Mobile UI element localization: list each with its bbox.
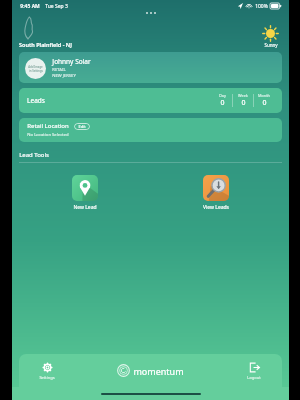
staticText: Retail Location [27,122,69,130]
staticText: NEW JERSEY [52,73,76,79]
other: View Leads [203,175,229,201]
staticText: 9:45 AM [20,3,40,10]
staticText: New Lead [73,204,97,211]
staticText: South Plainfield - NJ [19,41,72,48]
staticText: Sunny [264,42,278,48]
button[interactable]: View Leads [201,173,231,213]
button[interactable]: Add Image [19,52,282,83]
staticText: Lead Tools [19,151,49,159]
staticText: momentum [133,365,184,377]
staticText: Month [258,93,270,98]
staticText: View Leads [203,204,229,211]
button[interactable]: New Lead [70,173,100,213]
staticText: Tue Sep 3 [45,3,68,10]
other: New Lead [72,175,98,201]
staticText: in Settings [29,69,43,73]
staticText: No Location Selected [27,132,69,138]
button[interactable]: Retail Location [19,118,282,142]
button[interactable]: Settings [29,362,65,380]
staticText: Day [219,93,226,98]
other: Settings [42,362,53,373]
staticText: 0 [220,98,225,108]
staticText: 100% [255,3,268,10]
staticText: Leads [27,96,45,105]
other: Logout [249,362,260,373]
staticText: 0 [262,98,267,108]
staticText: Settings [39,375,55,380]
staticText: Johnny Solar [52,57,91,66]
button[interactable]: Logout [236,362,272,380]
staticText: Add Image [28,65,43,69]
staticText: Week [238,93,248,98]
button[interactable]: Leads [19,88,282,113]
button[interactable]: momentum [117,364,184,377]
staticText: RETAIL [52,67,66,73]
staticText: Logout [247,375,261,380]
button[interactable]: Edit [74,123,90,130]
staticText: 0 [241,98,246,108]
staticText: Edit [78,124,86,129]
